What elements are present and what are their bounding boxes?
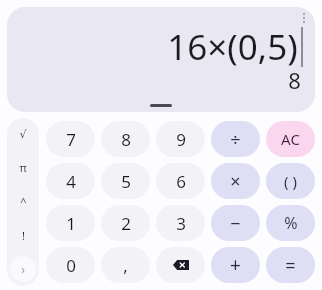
button[interactable]: % [266, 205, 315, 241]
button[interactable]: ^ [7, 184, 39, 218]
button[interactable]: 3 [156, 205, 205, 241]
staticText: 4 [66, 170, 76, 193]
button[interactable]: 0 [46, 247, 95, 283]
staticText: › [21, 261, 25, 277]
button[interactable]: 2 [101, 205, 150, 241]
staticText: , [123, 254, 128, 277]
button[interactable]: 7 [46, 121, 95, 157]
staticText: 9 [176, 128, 186, 151]
staticText: 1 [66, 212, 76, 235]
button[interactable]: = [266, 247, 315, 283]
button[interactable]: − [211, 205, 260, 241]
button[interactable]: 5 [101, 163, 150, 199]
staticText: 8 [121, 128, 131, 151]
staticText: ( ) [284, 171, 297, 191]
staticText: = [285, 253, 296, 278]
button[interactable]: ( ) [266, 163, 315, 199]
button[interactable]: Expand history [150, 104, 172, 107]
button[interactable]: π [7, 151, 39, 184]
staticText: 8 [288, 65, 301, 95]
button[interactable]: √ [7, 118, 39, 151]
staticText: 2 [121, 212, 131, 235]
button[interactable]: ! [7, 218, 39, 252]
staticText: 5 [121, 170, 131, 193]
button[interactable]: 9 [156, 121, 205, 157]
staticText: √ [19, 128, 27, 141]
staticText: − [230, 211, 241, 236]
button[interactable]: More functions [10, 256, 36, 282]
staticText: % [284, 212, 298, 234]
button[interactable]: , [101, 247, 150, 283]
staticText: × [230, 169, 241, 194]
button[interactable]: 1 [46, 205, 95, 241]
staticText: AC [281, 129, 300, 149]
button[interactable]: ÷ [211, 121, 260, 157]
button[interactable]: More options [293, 7, 315, 29]
button[interactable]: 4 [46, 163, 95, 199]
staticText: π [19, 160, 27, 175]
staticText: ^ [20, 194, 27, 209]
button[interactable]: AC [266, 121, 315, 157]
button[interactable]: 6 [156, 163, 205, 199]
button[interactable]: 8 [101, 121, 150, 157]
staticText: + [230, 252, 241, 278]
staticText: ÷ [230, 127, 241, 152]
staticText: 6 [176, 170, 186, 193]
button[interactable]: × [211, 163, 260, 199]
staticText: 3 [176, 212, 186, 235]
staticText: 16×(0,5) [167, 23, 298, 71]
staticText: 0 [66, 254, 76, 277]
button[interactable]: Backspace [156, 247, 205, 283]
button[interactable]: + [211, 247, 260, 283]
staticText: 7 [66, 128, 76, 151]
staticText: ! [22, 228, 25, 243]
